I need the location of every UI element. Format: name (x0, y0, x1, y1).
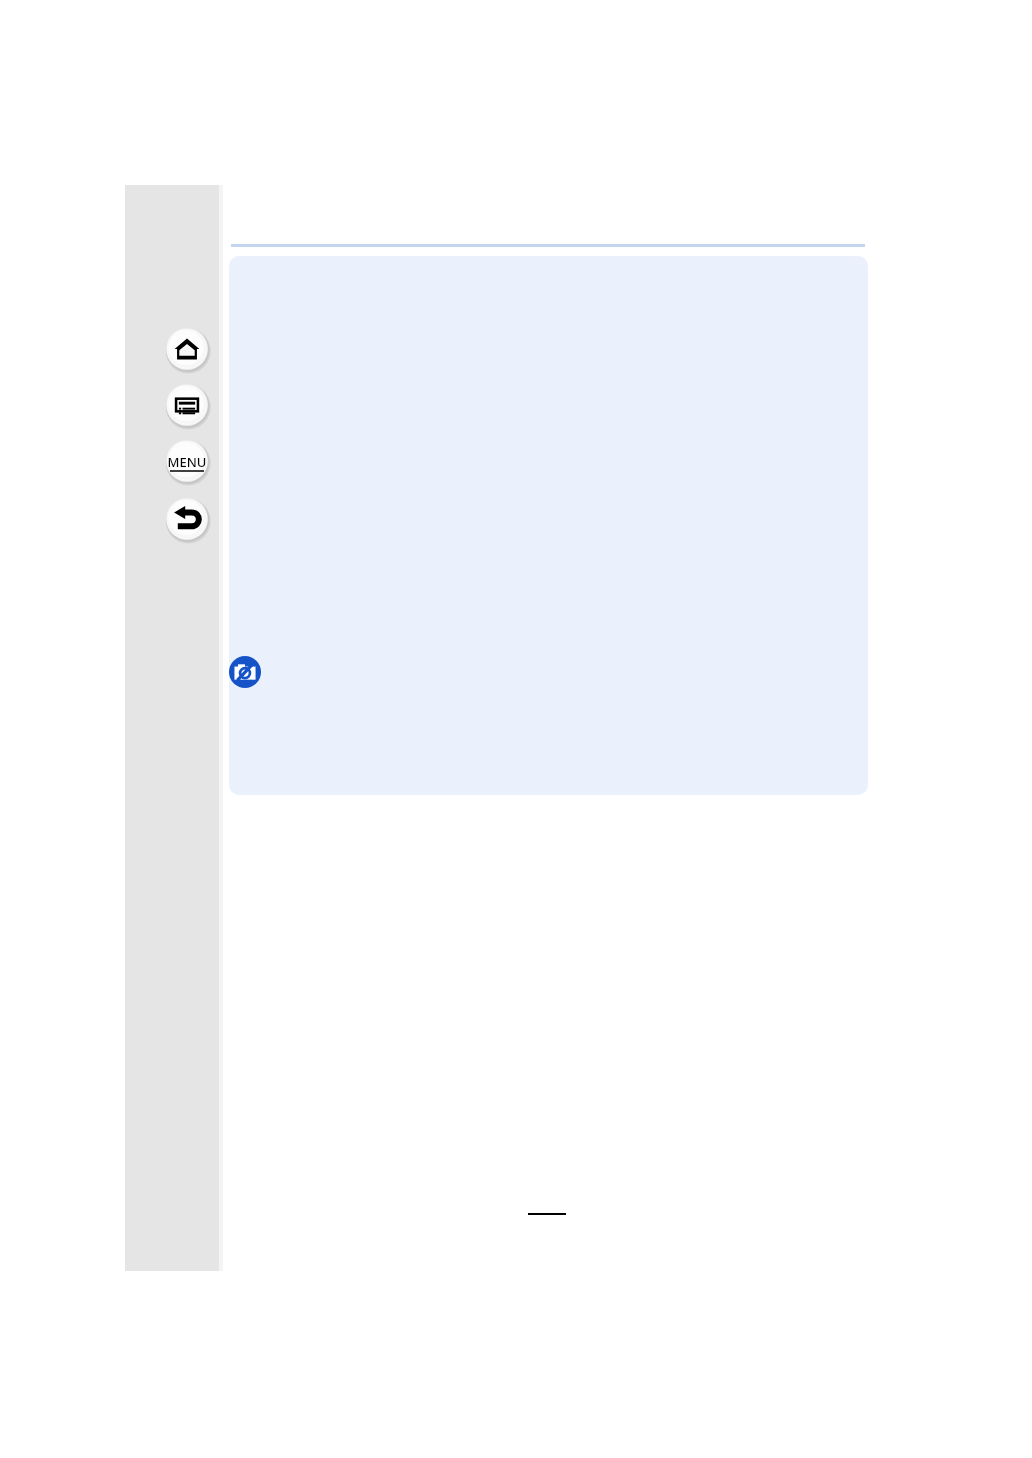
button[interactable]: Not available (229, 656, 261, 688)
button[interactable]: Display / Record (164, 382, 210, 428)
staticText: MENU (167, 453, 207, 471)
button[interactable]: Back (164, 496, 210, 542)
button[interactable]: Home (164, 326, 210, 372)
button[interactable]: Menu (164, 438, 210, 484)
